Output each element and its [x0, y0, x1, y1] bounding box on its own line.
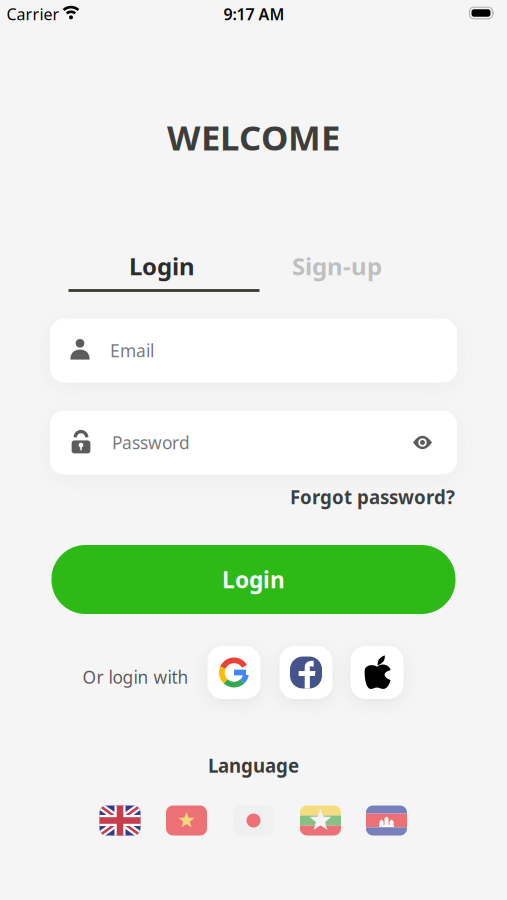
button[interactable]: Login with Apple: [350, 646, 403, 699]
staticText: Login: [129, 250, 195, 282]
button[interactable]: Tiếng Việt: [166, 805, 207, 835]
button[interactable]: Forgot password?: [0, 485, 455, 509]
staticText: Carrier: [6, 3, 59, 25]
staticText: Or login with: [82, 665, 188, 688]
button[interactable]: Show password: [413, 435, 432, 450]
staticText: WELCOME: [167, 114, 340, 160]
button[interactable]: Login with Facebook: [279, 646, 332, 699]
staticText: Password: [112, 431, 190, 454]
button[interactable]: Login: [129, 250, 195, 282]
button[interactable]: 日本語: [233, 805, 274, 835]
button[interactable]: Login with Google: [207, 646, 260, 699]
staticText: Language: [208, 753, 299, 778]
button[interactable]: မြန်မာ: [300, 805, 341, 835]
button[interactable]: ខ្មែរ: [366, 805, 407, 835]
staticText: Sign-up: [292, 250, 382, 282]
staticText: 9:17 AM: [223, 3, 284, 25]
button[interactable]: Password: [50, 410, 457, 474]
staticText: Email: [110, 339, 154, 362]
button[interactable]: English: [99, 805, 140, 835]
staticText: Login: [222, 564, 285, 594]
button[interactable]: Sign-up: [292, 250, 382, 282]
button[interactable]: Email: [50, 318, 457, 382]
staticText: Forgot password?: [290, 485, 455, 509]
button[interactable]: Login: [51, 545, 455, 614]
